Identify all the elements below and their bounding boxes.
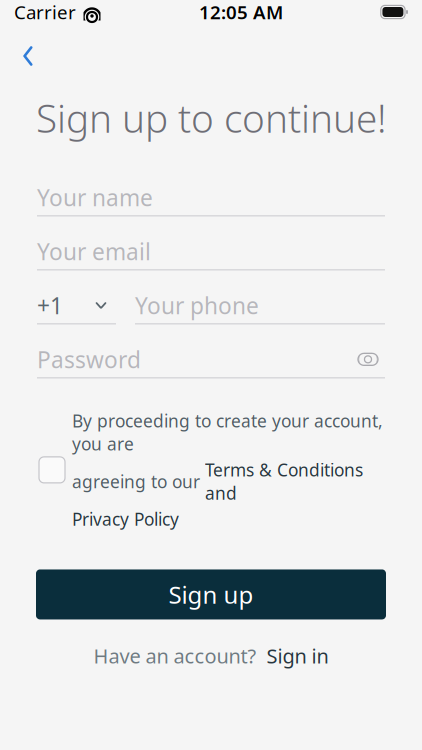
staticText: Carrier: [14, 0, 76, 24]
staticText: Have an account?: [93, 642, 256, 669]
staticText: Password: [37, 344, 141, 374]
staticText: +1: [37, 290, 63, 320]
button[interactable]: Terms & Conditions and: [205, 458, 363, 504]
staticText: Privacy Policy: [72, 507, 179, 530]
staticText: Your phone: [135, 290, 259, 320]
button[interactable]: Sign up: [36, 569, 386, 619]
staticText: Sign up to continue!: [36, 92, 387, 143]
button[interactable]: Agree to terms: [32, 446, 72, 494]
staticText: Your email: [37, 236, 151, 266]
button[interactable]: Back: [6, 34, 50, 78]
button[interactable]: Your name: [37, 179, 385, 216]
staticText: Your name: [37, 182, 153, 212]
button[interactable]: Your phone: [135, 287, 385, 324]
staticText: agreeing to our: [72, 470, 205, 493]
button[interactable]: Show password: [351, 343, 385, 375]
staticText: Sign up: [168, 578, 253, 610]
staticText: Terms & Conditions and: [205, 458, 363, 504]
staticText: Sign in: [266, 642, 328, 669]
button[interactable]: Privacy Policy: [72, 507, 179, 530]
staticText: 12:05 AM: [199, 0, 283, 24]
staticText: By proceeding to create your account, yo…: [72, 409, 383, 455]
button[interactable]: Sign in: [266, 642, 328, 669]
button[interactable]: Your email: [37, 233, 385, 270]
button[interactable]: +1: [37, 287, 116, 324]
